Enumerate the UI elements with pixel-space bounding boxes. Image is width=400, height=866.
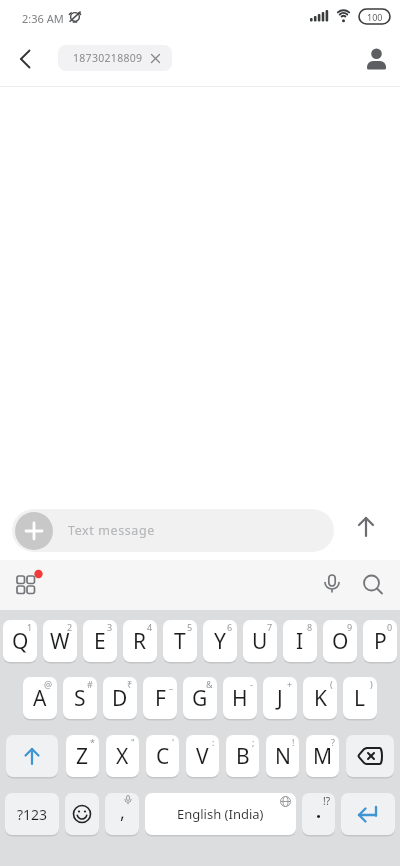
staticText: H [232, 684, 248, 713]
staticText: Text message [68, 522, 155, 539]
staticText: 8 [307, 621, 313, 633]
button[interactable]: U [243, 620, 277, 662]
staticText: 2 [67, 621, 73, 633]
staticText: + [287, 678, 293, 690]
button[interactable]: B [226, 735, 259, 777]
button[interactable]: ?123 [5, 793, 59, 835]
button[interactable]: V [186, 735, 219, 777]
staticText: - [250, 678, 253, 690]
staticText: " [131, 736, 135, 748]
staticText: & [206, 678, 213, 690]
button[interactable]: . [302, 793, 335, 835]
button[interactable]: N [266, 735, 299, 777]
button[interactable] [314, 567, 350, 603]
button[interactable]: K [303, 677, 337, 719]
staticText: ! [292, 736, 295, 748]
staticText: S [74, 684, 86, 713]
button[interactable]: English (India) [145, 793, 296, 835]
button[interactable] [346, 735, 394, 777]
button[interactable]: W [43, 620, 77, 662]
staticText: 6 [227, 621, 233, 633]
staticText: ; [252, 736, 255, 748]
button[interactable]: T [163, 620, 197, 662]
staticText: 4 [147, 621, 153, 633]
button[interactable] [341, 793, 395, 835]
button[interactable] [10, 567, 46, 603]
staticText: : [212, 736, 215, 748]
staticText: !? [323, 794, 331, 808]
staticText: English (India) [177, 805, 264, 823]
staticText: F [155, 684, 166, 713]
staticText: 2:36 AM [22, 11, 64, 26]
button[interactable] [6, 735, 58, 777]
staticText: D [112, 684, 128, 713]
button[interactable]: Q [3, 620, 37, 662]
staticText: Q [12, 627, 29, 656]
staticText: 5 [187, 621, 193, 633]
staticText: 18730218809 [73, 51, 143, 65]
button[interactable] [355, 567, 391, 603]
staticText: _ [169, 678, 173, 690]
staticText: R [133, 627, 147, 656]
staticText: 3 [107, 621, 113, 633]
button[interactable] [8, 42, 42, 76]
button[interactable] [348, 512, 384, 548]
button[interactable]: I [283, 620, 317, 662]
staticText: * [90, 736, 95, 748]
button[interactable]: P [363, 620, 397, 662]
button[interactable]: Z [66, 735, 99, 777]
button[interactable] [65, 793, 99, 835]
staticText: ' [172, 736, 175, 748]
button[interactable]: J [263, 677, 297, 719]
staticText: ? [331, 736, 335, 748]
button[interactable]: S [63, 677, 97, 719]
button[interactable]: Y [203, 620, 237, 662]
button[interactable]: E [83, 620, 117, 662]
staticText: U [252, 627, 268, 656]
button[interactable]: 18730218809 [58, 45, 172, 71]
staticText: I [296, 627, 304, 656]
staticText: # [87, 678, 93, 690]
staticText: J [277, 684, 283, 713]
staticText: L [354, 684, 366, 713]
button[interactable]: D [103, 677, 137, 719]
staticText: K [314, 684, 327, 713]
staticText: @ [44, 678, 53, 690]
staticText: 0 [387, 621, 393, 633]
staticText: 7 [267, 621, 273, 633]
staticText: N [275, 742, 291, 771]
staticText: ?123 [17, 805, 48, 824]
button[interactable]: O [323, 620, 357, 662]
button[interactable]: R [123, 620, 157, 662]
staticText: W [50, 627, 70, 656]
staticText: . [316, 799, 322, 824]
staticText: V [196, 742, 209, 771]
button[interactable]: H [223, 677, 257, 719]
button[interactable]: M [306, 735, 339, 777]
staticText: A [33, 684, 47, 713]
staticText: 100 [367, 11, 383, 23]
staticText: , [120, 800, 125, 825]
staticText: ( [330, 678, 333, 690]
button[interactable]: L [343, 677, 377, 719]
staticText: G [192, 684, 208, 713]
button[interactable] [358, 40, 394, 76]
staticText: 1 [27, 621, 33, 633]
staticText: Z [76, 742, 89, 771]
staticText: M [313, 742, 333, 771]
staticText: C [156, 742, 170, 771]
staticText: 9 [347, 621, 353, 633]
button[interactable]: C [146, 735, 179, 777]
button[interactable]: X [106, 735, 139, 777]
staticText: E [94, 627, 106, 656]
button[interactable]: , [105, 793, 139, 835]
button[interactable]: Text message [12, 509, 334, 552]
button[interactable]: A [23, 677, 57, 719]
staticText: O [332, 627, 349, 656]
button[interactable]: G [183, 677, 217, 719]
button[interactable]: F [143, 677, 177, 719]
staticText: P [374, 627, 387, 656]
staticText: X [116, 742, 129, 771]
staticText: T [174, 627, 186, 656]
staticText: ₹ [127, 678, 133, 690]
